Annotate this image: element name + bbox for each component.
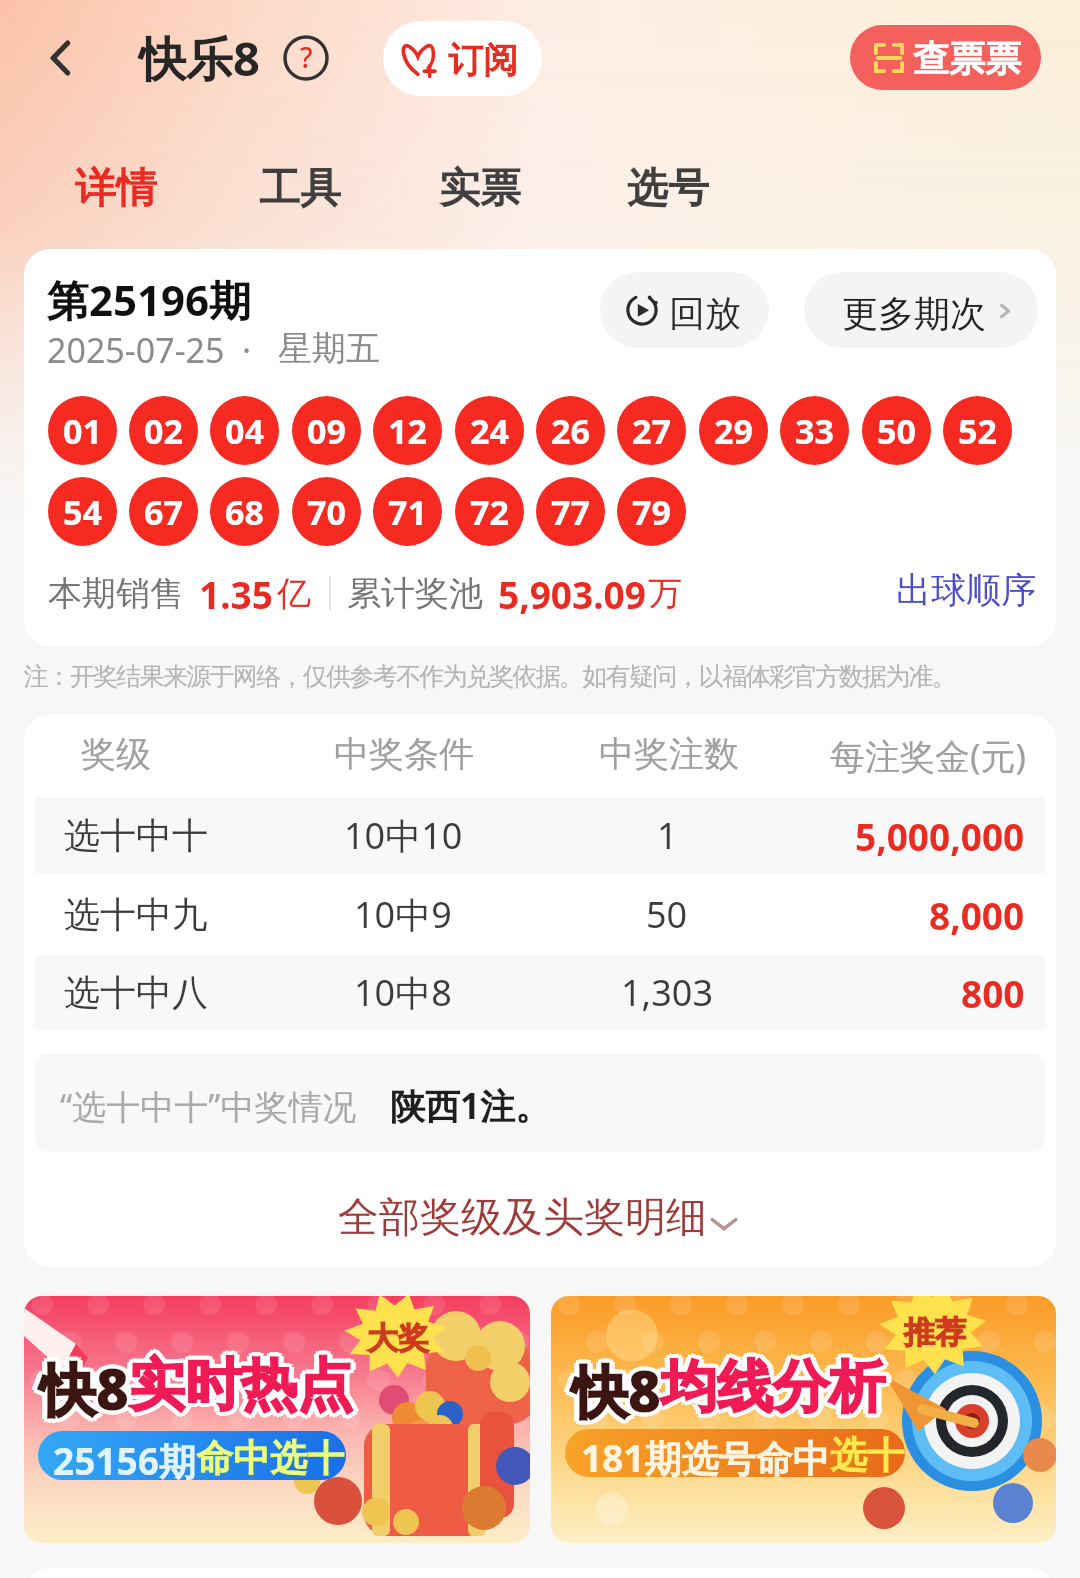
staticText: 推荐 — [904, 1313, 966, 1352]
staticText: 快8 — [575, 1349, 664, 1425]
staticText: 选十中十 — [64, 813, 208, 858]
staticText: 中奖条件 — [334, 732, 474, 776]
staticText: 万 — [648, 572, 682, 615]
staticText: 02 — [144, 408, 183, 454]
staticText: 1,303 — [621, 968, 714, 1017]
button[interactable]: 快8实时热点 banner — [24, 1296, 530, 1543]
staticText: · — [242, 327, 252, 373]
staticText: 实票 — [439, 163, 521, 215]
staticText: 实时热点 — [126, 1353, 350, 1424]
staticText: 12 — [388, 408, 427, 454]
button[interactable]: 订阅 — [383, 21, 542, 96]
staticText: 累计奖池 — [347, 572, 483, 615]
staticText: 快8 — [43, 1353, 132, 1429]
button[interactable]: 快8均线分析 banner — [551, 1296, 1056, 1543]
staticText: 均线分析 — [657, 1352, 881, 1423]
staticText: 快8 — [567, 1352, 656, 1428]
staticText: 实时热点 — [132, 1347, 356, 1418]
staticText: 回放 — [669, 291, 741, 336]
staticText: 04 — [225, 408, 264, 454]
button[interactable]: 查票票 — [850, 25, 1041, 90]
staticText: 快8 — [577, 1352, 666, 1428]
staticText: 均线分析 — [664, 1349, 888, 1420]
staticText: 均线分析 — [661, 1348, 885, 1419]
staticText: 2025-07-25 — [47, 327, 225, 373]
staticText: 09 — [307, 408, 346, 454]
staticText: 命中选十 — [196, 1435, 344, 1480]
staticText: 10中8 — [354, 968, 452, 1017]
staticText: 第25196期 — [47, 271, 252, 328]
staticText: 快8 — [569, 1349, 658, 1425]
staticText: 70 — [307, 489, 346, 535]
staticText: 快8 — [575, 1355, 664, 1431]
staticText: 快8 — [37, 1347, 126, 1423]
staticText: 33 — [795, 408, 834, 454]
button[interactable]: 工具 — [236, 153, 364, 225]
staticText: 全部奖级及头奖明细 — [338, 1192, 707, 1244]
staticText: 5,903.09 — [498, 569, 646, 619]
button[interactable]: 选号 — [604, 153, 732, 225]
staticText: 72 — [470, 489, 509, 535]
staticText: 54 — [63, 489, 102, 535]
button[interactable]: 实票 — [416, 153, 544, 225]
staticText: 注：开奖结果来源于网络，仅供参考不作为兑奖依据。如有疑问，以福体彩官方数据为准。 — [24, 661, 956, 692]
staticText: 星期五 — [278, 327, 380, 370]
staticText: 8,000 — [929, 890, 1025, 940]
staticText: 快8 — [35, 1350, 124, 1426]
staticText: 50 — [877, 408, 916, 454]
staticText: 工具 — [259, 163, 341, 215]
staticText: 快8 — [45, 1350, 134, 1426]
button[interactable]: 回放 — [600, 272, 769, 348]
staticText: 选十中八 — [64, 970, 208, 1015]
staticText: 订阅 — [448, 38, 518, 82]
staticText: 快8 — [572, 1352, 661, 1428]
button[interactable]: Back — [28, 24, 96, 92]
staticText: 实时热点 — [124, 1350, 348, 1421]
button[interactable]: Help — [283, 35, 329, 81]
staticText: 77 — [551, 489, 590, 535]
staticText: 快乐8 — [139, 26, 260, 90]
staticText: 快8 — [40, 1354, 129, 1430]
staticText: 实时热点 — [133, 1350, 357, 1421]
staticText: 实时热点 — [129, 1346, 353, 1417]
staticText: “选十中十”中奖情况 — [60, 1083, 357, 1129]
staticText: 52 — [958, 408, 997, 454]
staticText: 查票票 — [913, 36, 1021, 81]
staticText: 快8 — [572, 1348, 661, 1424]
staticText: 67 — [144, 489, 183, 535]
staticText: 奖级 — [81, 732, 151, 776]
staticText: 选号 — [627, 163, 709, 215]
staticText: 快8 — [37, 1353, 126, 1429]
staticText: 更多期次 — [842, 291, 986, 336]
staticText: 实时热点 — [129, 1350, 353, 1421]
staticText: 大奖 — [367, 1319, 429, 1358]
staticText: 出球顺序 — [896, 568, 1036, 612]
staticText: 均线分析 — [666, 1352, 890, 1423]
staticText: 25156期 — [53, 1435, 196, 1480]
staticText: 均线分析 — [658, 1349, 882, 1420]
staticText: 实时热点 — [125, 1350, 349, 1421]
staticText: 10中9 — [354, 890, 452, 939]
staticText: 选十中九 — [64, 892, 208, 937]
staticText: 快8 — [572, 1356, 661, 1432]
button[interactable]: 详情 — [52, 153, 180, 225]
staticText: 均线分析 — [656, 1352, 880, 1423]
staticText: 800 — [961, 968, 1025, 1018]
staticText: 本期销售 — [48, 572, 184, 615]
staticText: 01 — [63, 408, 102, 454]
staticText: 实时热点 — [132, 1353, 356, 1424]
staticText: 71 — [388, 489, 427, 535]
button[interactable]: 出球顺序 — [886, 562, 1046, 618]
staticText: 10中10 — [344, 811, 463, 860]
staticText: 快8 — [576, 1352, 665, 1428]
staticText: 快8 — [36, 1350, 125, 1426]
staticText: 实时热点 — [129, 1354, 353, 1425]
staticText: 均线分析 — [661, 1352, 885, 1423]
staticText: 陕西1注。 — [390, 1082, 551, 1130]
button[interactable]: 更多期次 — [804, 272, 1038, 348]
staticText: 快8 — [43, 1347, 132, 1423]
staticText: 26 — [551, 408, 590, 454]
staticText: 均线分析 — [665, 1352, 889, 1423]
button[interactable]: 全部奖级及头奖明细 — [314, 1171, 774, 1241]
staticText: 中奖注数 — [599, 732, 739, 776]
